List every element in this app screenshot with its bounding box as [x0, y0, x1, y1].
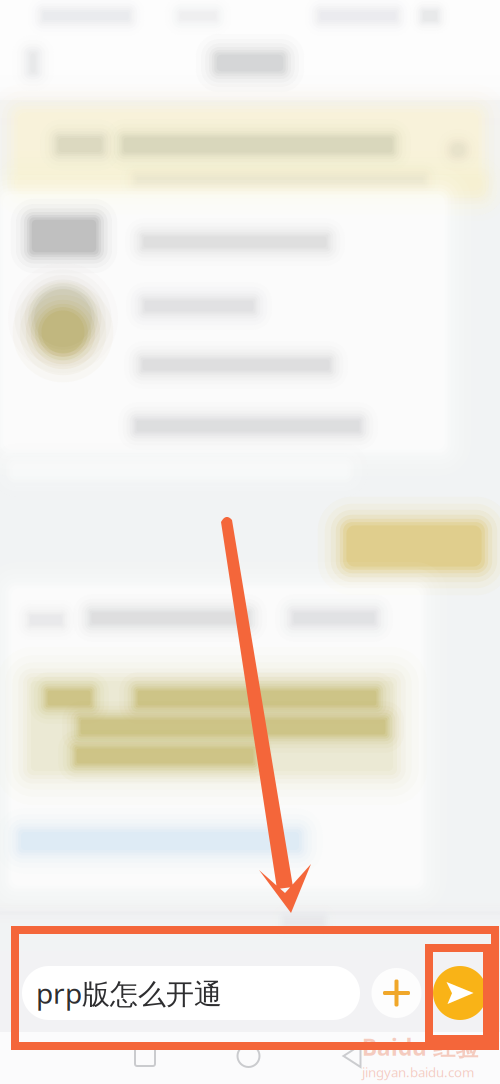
button[interactable]: Send [433, 966, 487, 1020]
staticText: jingyan.baidu.com [362, 1063, 474, 1081]
staticText: prp版怎么开通 [36, 974, 222, 1012]
button[interactable]: Back [320, 1038, 384, 1074]
button[interactable]: Add attachment [370, 966, 422, 1020]
button[interactable]: Recent apps [113, 1038, 177, 1074]
staticText: Baidu 经验 [362, 1032, 479, 1062]
button[interactable]: Home [216, 1038, 280, 1074]
button[interactable]: prp版怎么开通 [22, 966, 360, 1020]
